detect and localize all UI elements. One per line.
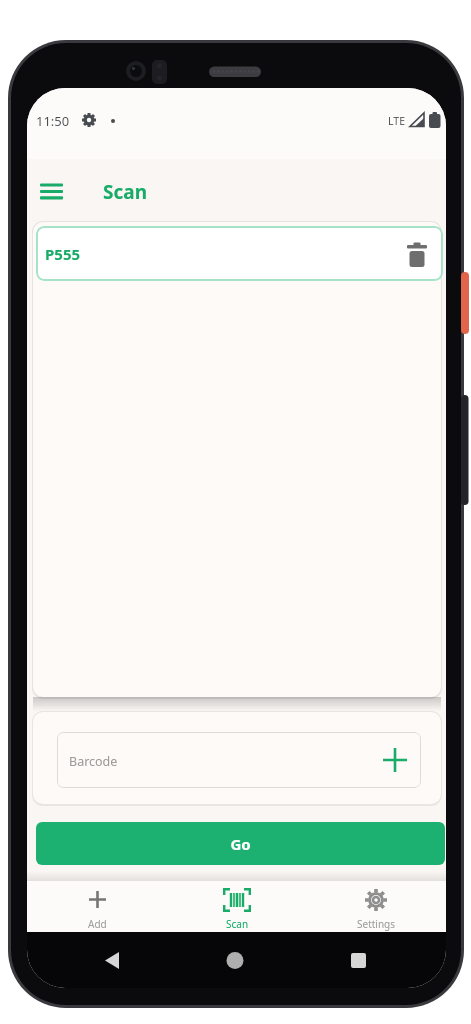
button[interactable]: Scan bbox=[197, 881, 277, 932]
button[interactable] bbox=[397, 234, 437, 274]
staticText: Barcode bbox=[69, 753, 118, 770]
button[interactable]: Go bbox=[36, 822, 445, 865]
staticText: Scan bbox=[103, 179, 148, 205]
button[interactable] bbox=[375, 740, 415, 780]
staticText: P555 bbox=[45, 244, 81, 264]
button[interactable]: Settings bbox=[336, 881, 416, 932]
staticText: Add bbox=[88, 917, 107, 931]
staticText: Settings bbox=[357, 917, 396, 931]
staticText: 11:50 bbox=[36, 112, 70, 130]
staticText: LTE bbox=[388, 114, 405, 128]
button[interactable]: Barcode bbox=[57, 732, 421, 788]
button[interactable]: Add bbox=[57, 881, 137, 932]
staticText: Go bbox=[230, 834, 251, 854]
button[interactable] bbox=[31, 175, 71, 207]
staticText: Scan bbox=[226, 917, 249, 931]
button[interactable]: P555 bbox=[36, 226, 443, 281]
